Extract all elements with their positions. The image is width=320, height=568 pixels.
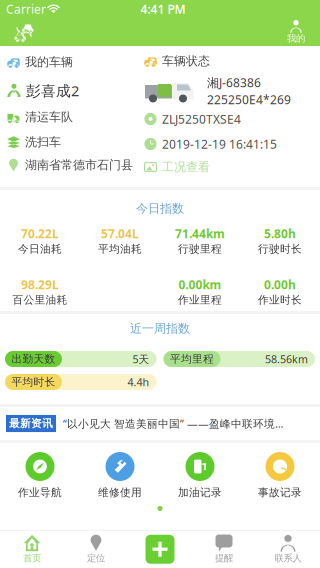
button[interactable]: 定位: [64, 531, 128, 568]
staticText: 湘J-68386: [207, 74, 261, 90]
staticText: 我的车辆: [25, 55, 73, 69]
staticText: 彭喜成2: [26, 81, 79, 100]
staticText: 0.00km: [178, 276, 221, 292]
staticText: ZLJ5250TXSE4: [162, 111, 241, 127]
staticText: 平均油耗: [98, 242, 142, 255]
staticText: 行驶里程: [178, 242, 222, 255]
staticText: 洗扫车: [25, 135, 61, 149]
staticText: 作业时长: [258, 293, 302, 306]
staticText: 4.4h: [127, 375, 149, 389]
staticText: 定位: [87, 552, 105, 564]
staticText: 车辆状态: [162, 54, 210, 68]
staticText: 今日油耗: [18, 242, 62, 255]
button[interactable]: 联系人: [256, 531, 320, 568]
staticText: 225250E4*269: [207, 91, 291, 107]
button[interactable]: 提醒: [192, 531, 256, 568]
staticText: 0.00h: [264, 276, 296, 292]
button[interactable]: 工况查看: [144, 156, 313, 178]
staticText: Carrier: [6, 1, 46, 17]
button[interactable]: 最新资讯: [0, 407, 320, 440]
staticText: 最新资讯: [9, 417, 53, 430]
staticText: 百公里油耗: [12, 293, 67, 306]
staticText: 我的: [287, 33, 305, 44]
button[interactable]: 我的: [276, 18, 316, 46]
button[interactable]: 作业导航: [0, 452, 80, 499]
staticText: 2019-12-19 16:41:15: [162, 136, 277, 152]
staticText: 湖南省常德市石门县: [25, 158, 133, 172]
staticText: 首页: [23, 552, 41, 564]
button[interactable]: 新增: [128, 531, 192, 568]
button[interactable]: 事故记录: [240, 452, 320, 499]
button[interactable]: 加油记录: [160, 452, 240, 499]
staticText: 57.04L: [101, 225, 139, 241]
staticText: 71.44km: [175, 225, 225, 241]
staticText: 平均时长: [11, 375, 55, 388]
button[interactable]: 维修使用: [80, 452, 160, 499]
staticText: 5.80h: [264, 225, 296, 241]
staticText: 提醒: [215, 552, 233, 564]
button[interactable]: 切换车辆: [4, 18, 44, 46]
staticText: 5天: [132, 352, 149, 366]
staticText: 行驶时长: [258, 242, 302, 255]
button[interactable]: 首页: [0, 531, 64, 568]
staticText: “以小见大 智造美丽中国” ——盈峰中联环境…: [63, 416, 283, 431]
staticText: 联系人: [274, 552, 301, 564]
staticText: 4:41 PM: [140, 1, 185, 17]
staticText: 58.56km: [265, 352, 308, 366]
staticText: 作业导航: [18, 486, 62, 499]
staticText: 清运车队: [25, 110, 73, 124]
staticText: 近一周指数: [130, 321, 190, 336]
staticText: 维修使用: [98, 486, 142, 499]
staticText: 事故记录: [258, 486, 302, 499]
staticText: 70.22L: [21, 225, 59, 241]
staticText: 出勤天数: [11, 352, 55, 365]
staticText: 工况查看: [162, 160, 210, 174]
staticText: 加油记录: [178, 486, 222, 499]
staticText: 今日指数: [136, 201, 184, 216]
staticText: 平均里程: [170, 352, 214, 365]
staticText: 作业里程: [178, 293, 222, 306]
staticText: 98.29L: [21, 276, 59, 292]
